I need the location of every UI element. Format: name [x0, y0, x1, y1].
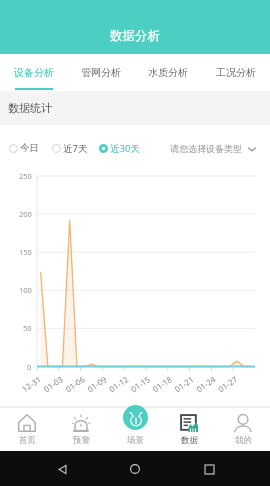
button[interactable]: 近30天: [99, 142, 140, 155]
button[interactable]: 设备分析: [0, 54, 67, 91]
staticText: 请您选择设备类型: [170, 143, 242, 154]
button[interactable]: Back: [50, 457, 74, 481]
button[interactable]: 首页: [0, 408, 54, 451]
button[interactable]: 今日: [9, 142, 39, 154]
button[interactable]: 工况分析: [202, 54, 270, 91]
button[interactable]: Recents: [197, 457, 221, 481]
staticText: 数据分析: [110, 28, 160, 44]
staticText: 管网分析: [81, 66, 121, 79]
staticText: 我的: [235, 435, 252, 446]
button[interactable]: 请您选择设备类型: [170, 143, 257, 154]
button[interactable]: 场景: [108, 408, 162, 451]
button[interactable]: Home: [123, 457, 147, 481]
staticText: 水质分析: [148, 66, 188, 79]
staticText: 场景: [127, 435, 144, 446]
staticText: 数据统计: [8, 101, 52, 115]
staticText: 近7天: [63, 142, 88, 155]
button[interactable]: 管网分析: [67, 54, 134, 91]
staticText: 工况分析: [216, 66, 256, 79]
button[interactable]: 预警: [54, 408, 108, 451]
staticText: 首页: [19, 435, 36, 446]
staticText: 预警: [73, 435, 90, 446]
staticText: 近30天: [110, 142, 140, 155]
staticText: 设备分析: [14, 66, 54, 79]
button[interactable]: 近7天: [52, 142, 88, 155]
button[interactable]: 数据: [162, 408, 216, 451]
button[interactable]: 水质分析: [134, 54, 202, 91]
staticText: 今日: [20, 142, 39, 154]
staticText: 数据: [181, 435, 198, 446]
other: 场景: [123, 405, 148, 430]
button[interactable]: 我的: [216, 408, 270, 451]
